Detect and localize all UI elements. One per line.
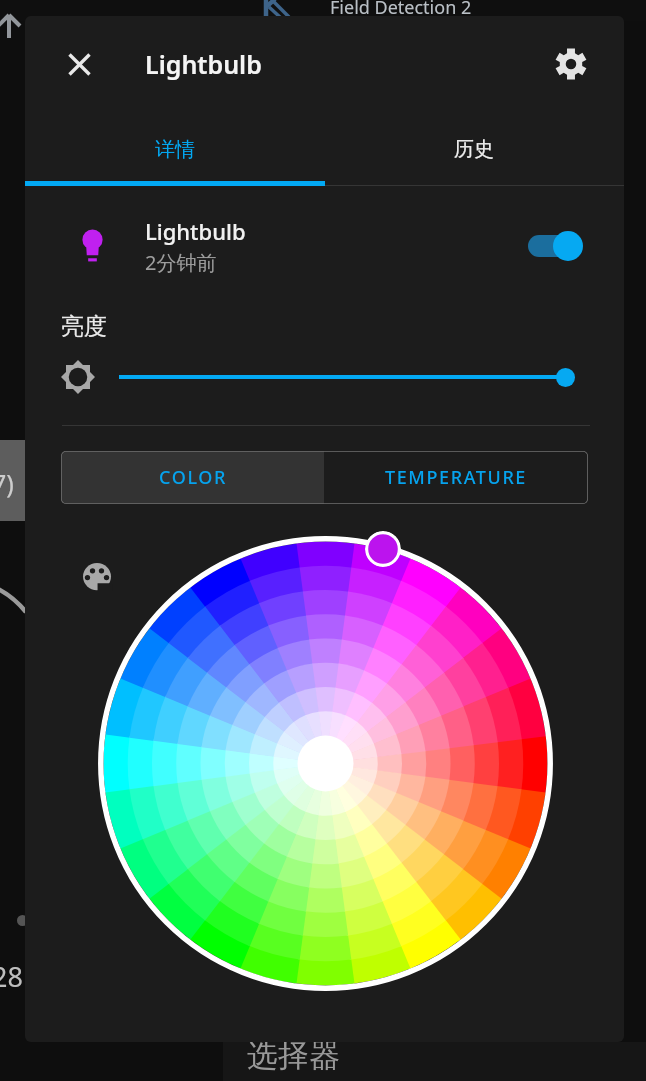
staticText: Lightbulb	[145, 47, 262, 81]
staticText: 详情	[155, 137, 195, 162]
button[interactable]: Color wheel	[93, 531, 558, 996]
button[interactable]: Close	[55, 40, 103, 88]
button[interactable]: Lightbulb	[25, 199, 624, 295]
button[interactable]: TEMPERATURE	[324, 451, 588, 504]
button[interactable]: 历史	[324, 112, 624, 182]
staticText: Lightbulb	[145, 216, 246, 246]
button[interactable]: COLOR	[61, 451, 324, 504]
button[interactable]: Toggle lightbulb	[520, 221, 598, 271]
staticText: TEMPERATURE	[385, 465, 527, 490]
staticText: 28	[0, 958, 23, 995]
staticText: 7)	[0, 466, 14, 500]
button[interactable]: Brightness slider	[556, 368, 575, 387]
staticText: 选择器	[247, 1036, 340, 1075]
button[interactable]: Selected colour	[365, 531, 401, 567]
staticText: 2分钟前	[145, 249, 217, 276]
button[interactable]: 详情	[25, 112, 324, 182]
staticText: COLOR	[159, 465, 227, 490]
staticText: 历史	[454, 137, 494, 162]
button[interactable]: Settings	[547, 40, 595, 88]
staticText: Field Detection 2	[330, 0, 472, 20]
staticText: 亮度	[61, 312, 107, 341]
